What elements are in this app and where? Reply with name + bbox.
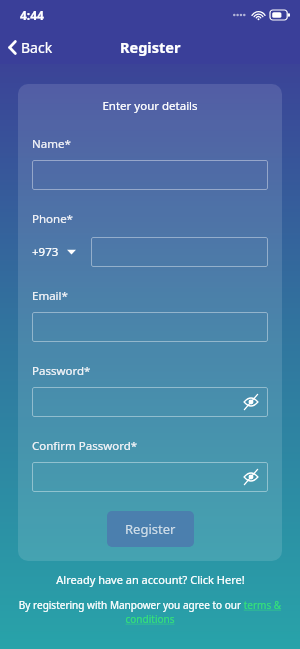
- button[interactable]: Register: [107, 511, 194, 547]
- staticText: By registering with Manpower you agree t…: [18, 598, 282, 626]
- staticText: Register: [120, 37, 181, 57]
- button[interactable]: Password: [32, 387, 268, 417]
- staticText: Enter your details: [32, 98, 268, 114]
- staticText: Email*: [32, 288, 68, 304]
- staticText: Already have an account? Click Here!: [56, 572, 245, 587]
- button[interactable]: Country code +973: [32, 239, 76, 265]
- button[interactable]: Show password: [242, 393, 260, 411]
- button[interactable]: Phone number: [91, 237, 268, 267]
- staticText: Confirm Password*: [32, 438, 138, 454]
- staticText: Password*: [32, 363, 91, 379]
- button[interactable]: By registering with Manpower you agree t…: [18, 598, 282, 626]
- button[interactable]: Name: [32, 160, 268, 190]
- staticText: Register: [125, 520, 176, 538]
- staticText: Phone*: [32, 211, 73, 227]
- staticText: 4:44: [20, 7, 44, 23]
- button[interactable]: Email: [32, 312, 268, 342]
- staticText: Name*: [32, 136, 71, 152]
- button[interactable]: Back: [4, 34, 57, 61]
- button[interactable]: Already have an account? Click Here!: [18, 572, 282, 587]
- staticText: +973: [32, 244, 59, 260]
- button[interactable]: Confirm Password: [32, 462, 268, 492]
- button[interactable]: Show password: [242, 468, 260, 486]
- staticText: Back: [21, 38, 53, 57]
